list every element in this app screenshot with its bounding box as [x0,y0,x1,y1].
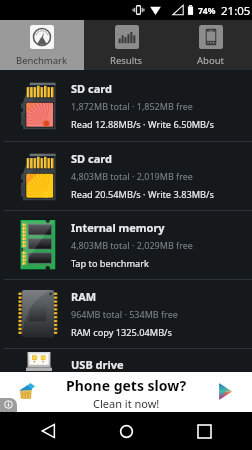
staticText: 74% [198,5,216,17]
staticText: RAM [71,289,97,304]
button[interactable]: SD card [0,70,252,141]
button[interactable]: Home [96,412,156,450]
staticText: 964MB total · 534MB free [71,308,178,320]
staticText: About [197,54,224,67]
staticText: Internal memory [71,220,165,235]
button[interactable]: Benchmark [0,20,84,70]
staticText: RAM copy 1325.04MB/s [71,326,172,339]
button[interactable]: Recent apps [174,412,234,450]
button[interactable]: SD card [0,142,252,210]
staticText: 4,803MB total · 2,029MB free [71,239,193,251]
button[interactable]: Ad information [0,398,17,412]
staticText: USB drive [71,357,124,372]
staticText: 21:05 [221,3,251,19]
staticText: Tap to benchmark [71,257,149,270]
button[interactable]: RAM [0,280,252,348]
staticText: Results [110,54,143,67]
staticText: Read 20.54MB/s · Write 3.83MB/s [71,188,214,201]
button[interactable]: About [168,20,252,70]
button[interactable]: USB drive [0,349,252,372]
staticText: SD card [71,151,112,166]
staticText: Read 12.88MB/s · Write 6.50MB/s [71,118,214,131]
staticText: Clean it now! [93,396,160,411]
staticText: SD card [71,81,112,96]
button[interactable]: Back [18,412,78,450]
staticText: Phone gets slow? [66,376,187,395]
button[interactable]: Internal memory [0,211,252,279]
button[interactable]: Phone gets slow? [0,372,252,412]
button[interactable]: Results [84,20,168,70]
staticText: Benchmark [16,54,68,67]
staticText: 4,803MB total · 2,019MB free [71,170,193,182]
staticText: 1,872MB total · 1,852MB free [71,100,193,112]
